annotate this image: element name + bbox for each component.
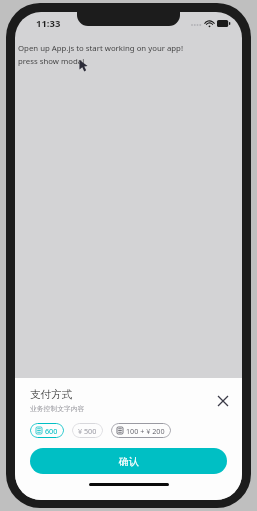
staticText: 确认 xyxy=(119,455,139,468)
staticText: 业务控制文字内容 xyxy=(30,404,85,413)
button[interactable]: ¥ 500 xyxy=(72,423,103,438)
button[interactable]: Close xyxy=(213,391,233,411)
staticText: ¥ 500 xyxy=(78,426,97,436)
button[interactable]: 确认 xyxy=(30,448,227,474)
staticText: press show modal xyxy=(18,56,85,67)
staticText: 600 xyxy=(45,426,58,436)
staticText: Open up App.js to start working on your … xyxy=(18,43,184,54)
staticText: 11:33 xyxy=(36,17,61,30)
button[interactable]: 100 + ¥ 200 xyxy=(111,423,171,438)
staticText: 支付方式 xyxy=(30,388,72,401)
staticText: 100 + ¥ 200 xyxy=(126,426,165,436)
button[interactable]: 600 xyxy=(30,423,64,438)
